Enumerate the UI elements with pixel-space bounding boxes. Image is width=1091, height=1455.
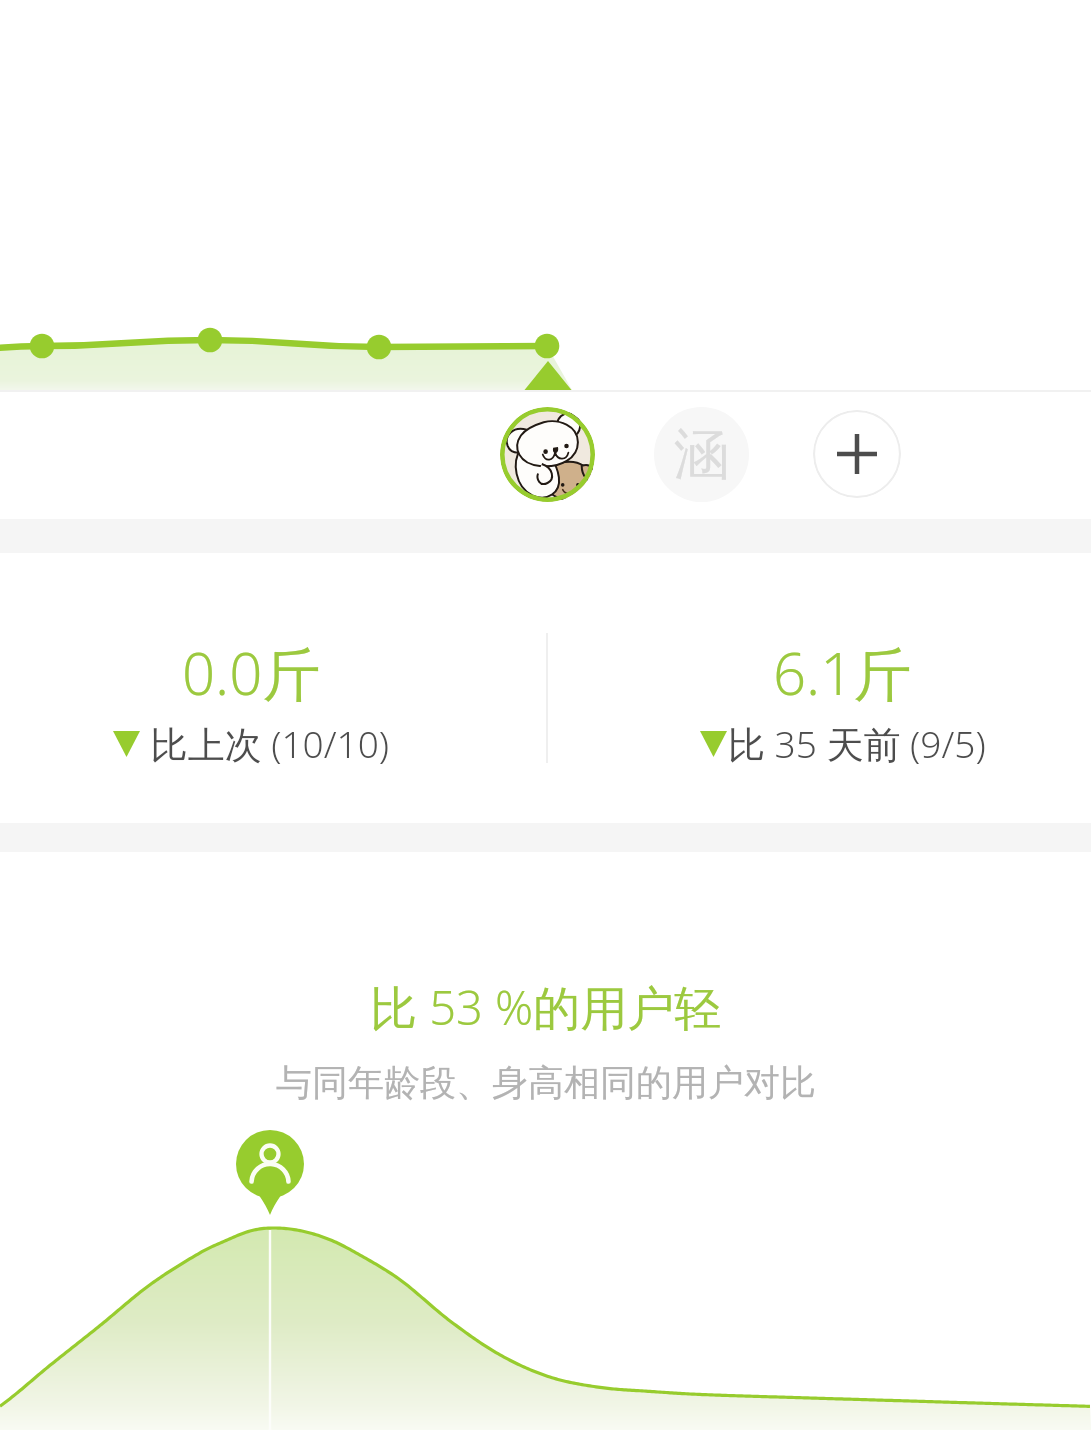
staticText: 比上次 (10/10) <box>141 718 390 769</box>
button[interactable]: Current profile <box>500 407 595 502</box>
staticText: 比 35 天前 (9/5) <box>728 718 986 769</box>
staticText: 比 53 %的用户轻 <box>370 975 722 1039</box>
button[interactable]: 比 53 %的用户轻 <box>0 852 1091 1455</box>
button[interactable]: Add member <box>813 410 901 498</box>
staticText: 与同年龄段、身高相同的用户对比 <box>276 1060 816 1105</box>
staticText: 6.1斤 <box>773 633 912 712</box>
staticText: 涵 <box>674 419 730 490</box>
button[interactable]: 涵 <box>654 407 749 502</box>
button[interactable]: 0.0斤 <box>0 553 546 823</box>
button[interactable]: 6.1斤 <box>546 553 1091 823</box>
staticText: 0.0斤 <box>182 633 321 712</box>
